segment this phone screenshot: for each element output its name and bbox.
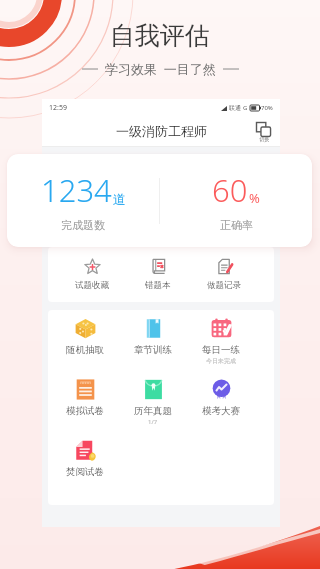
staticText: 试题收藏	[75, 280, 109, 291]
button[interactable]: 做题记录	[191, 247, 257, 302]
staticText: 焚阅试卷	[66, 466, 104, 478]
staticText: 章节训练	[134, 344, 172, 356]
staticText: 1234	[41, 169, 112, 211]
staticText: 1/7	[148, 418, 158, 426]
staticText: 自我评估	[110, 20, 210, 51]
staticText: G	[243, 104, 248, 112]
staticText: 历年真题	[134, 405, 172, 417]
staticText: 学习效果 一目了然	[105, 60, 216, 78]
staticText: 今日未完成	[206, 357, 236, 365]
button[interactable]: 历年真题	[119, 379, 187, 426]
button[interactable]: 错题本	[125, 247, 191, 302]
staticText: 错题本	[145, 280, 171, 291]
staticText: 12:59	[49, 103, 67, 113]
staticText: 模考大赛	[202, 405, 240, 417]
staticText: 完成题数	[61, 218, 105, 232]
staticText: 正确率	[220, 218, 253, 232]
staticText: 每日一练	[202, 344, 240, 356]
staticText: 做题记录	[207, 280, 241, 291]
button[interactable]: 每日一练	[187, 318, 255, 365]
staticText: 联通	[229, 104, 241, 112]
staticText: 切换	[259, 136, 269, 142]
staticText: 70%	[261, 104, 273, 112]
staticText: %	[249, 189, 260, 207]
staticText: 模拟试卷	[66, 405, 104, 417]
staticText: 一级消防工程师	[116, 123, 207, 139]
button[interactable]: 章节训练	[119, 318, 187, 356]
button[interactable]: 焚阅试卷	[51, 440, 119, 478]
button[interactable]: 模考大赛	[187, 379, 255, 417]
staticText: 60	[212, 169, 248, 211]
button[interactable]: 试题收藏	[59, 247, 125, 302]
button[interactable]: 模拟试卷	[51, 379, 119, 417]
button[interactable]: 切换	[256, 122, 271, 142]
button[interactable]: 随机抽取	[51, 318, 119, 356]
staticText: 随机抽取	[66, 344, 104, 356]
staticText: 道	[113, 191, 126, 207]
